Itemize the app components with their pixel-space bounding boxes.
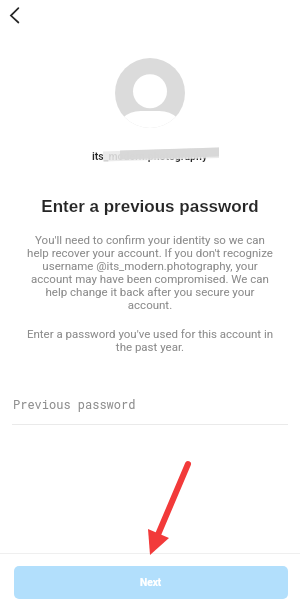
staticText: You'll need to confirm your identity so … [27,233,273,311]
staticText: Next [140,577,162,589]
staticText: Enter a previous password [0,197,300,216]
staticText: Enter a password you've used for this ac… [25,327,275,353]
button[interactable]: Previous password [0,390,300,424]
button[interactable]: Back [2,3,30,31]
staticText: Previous password [13,396,136,412]
staticText: its_modern.photography [92,150,208,162]
button[interactable]: Next [14,566,288,599]
